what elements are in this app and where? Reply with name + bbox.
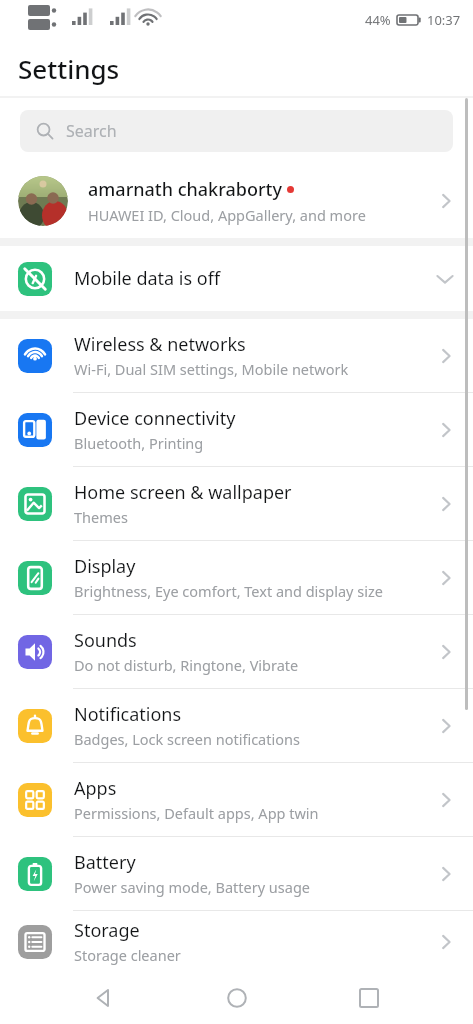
button[interactable]: Storage	[0, 911, 473, 972]
staticText: Badges, Lock screen notifications	[74, 729, 300, 749]
button[interactable]: Back	[76, 972, 132, 1024]
button[interactable]: Sounds	[0, 615, 473, 688]
staticText: Device connectivity	[74, 406, 236, 431]
staticText: amarnath chakraborty	[88, 177, 282, 202]
staticText: Notifications	[74, 702, 182, 727]
staticText: Settings	[18, 51, 120, 86]
staticText: Wi-Fi, Dual SIM settings, Mobile network	[74, 359, 349, 379]
button[interactable]: Device connectivity	[0, 393, 473, 466]
staticText: 10:37	[427, 11, 461, 29]
staticText: Home screen & wallpaper	[74, 480, 292, 505]
button[interactable]: amarnath chakraborty	[0, 164, 473, 238]
button[interactable]: Search	[20, 110, 453, 152]
staticText: Themes	[74, 507, 128, 527]
staticText: Apps	[74, 776, 117, 801]
button[interactable]: Notifications	[0, 689, 473, 762]
staticText: Bluetooth, Printing	[74, 433, 204, 453]
button[interactable]: Battery	[0, 837, 473, 910]
staticText: Power saving mode, Battery usage	[74, 877, 311, 897]
button[interactable]: Wireless & networks	[0, 319, 473, 392]
button[interactable]: Recent apps	[341, 972, 397, 1024]
button[interactable]: Display	[0, 541, 473, 614]
staticText: Storage	[74, 918, 140, 943]
staticText: Display	[74, 554, 136, 579]
staticText: 44%	[365, 11, 391, 29]
staticText: Brightness, Eye comfort, Text and displa…	[74, 581, 383, 601]
button[interactable]: Apps	[0, 763, 473, 836]
staticText: Wireless & networks	[74, 332, 246, 357]
staticText: Mobile data is off	[74, 266, 435, 291]
staticText: HUAWEI ID, Cloud, AppGallery, and more	[88, 205, 366, 225]
staticText: Storage cleaner	[74, 945, 181, 965]
button[interactable]: Home screen & wallpaper	[0, 467, 473, 540]
staticText: Do not disturb, Ringtone, Vibrate	[74, 655, 299, 675]
staticText: Battery	[74, 850, 136, 875]
staticText: Sounds	[74, 628, 137, 653]
button[interactable]: Mobile data is off	[0, 246, 473, 311]
button[interactable]: Home	[209, 972, 265, 1024]
staticText: Search	[66, 120, 117, 142]
staticText: Permissions, Default apps, App twin	[74, 803, 319, 823]
